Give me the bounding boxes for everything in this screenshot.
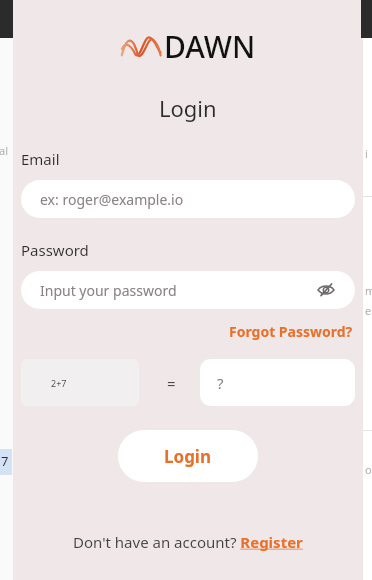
staticText: Don't have an account? Register xyxy=(73,532,303,552)
staticText: DAWN xyxy=(164,26,256,67)
button[interactable]: ? xyxy=(200,359,355,406)
staticText: Forgot Password? xyxy=(229,322,353,341)
staticText: 2+7 xyxy=(51,377,67,389)
staticText: Input your password xyxy=(40,281,177,300)
button[interactable]: Login xyxy=(118,430,258,482)
button[interactable]: Input your password xyxy=(21,271,355,309)
staticText: ? xyxy=(217,373,224,393)
staticText: 7 xyxy=(1,452,9,470)
staticText: Login xyxy=(159,93,217,123)
button[interactable]: Show password xyxy=(315,279,337,301)
button[interactable]: ex: roger@example.io xyxy=(21,180,355,218)
button[interactable]: Forgot Password? xyxy=(227,320,355,343)
staticText: Login xyxy=(164,445,212,468)
staticText: al xyxy=(0,143,9,158)
staticText: = xyxy=(167,373,176,393)
staticText: i xyxy=(365,146,368,161)
staticText: Password xyxy=(21,240,89,260)
staticText: e xyxy=(365,303,372,318)
staticText: o xyxy=(365,462,372,477)
button[interactable]: Don't have an account? Register xyxy=(71,530,305,554)
staticText: Email xyxy=(21,149,60,169)
staticText: m xyxy=(365,283,372,298)
staticText: ex: roger@example.io xyxy=(40,190,184,209)
